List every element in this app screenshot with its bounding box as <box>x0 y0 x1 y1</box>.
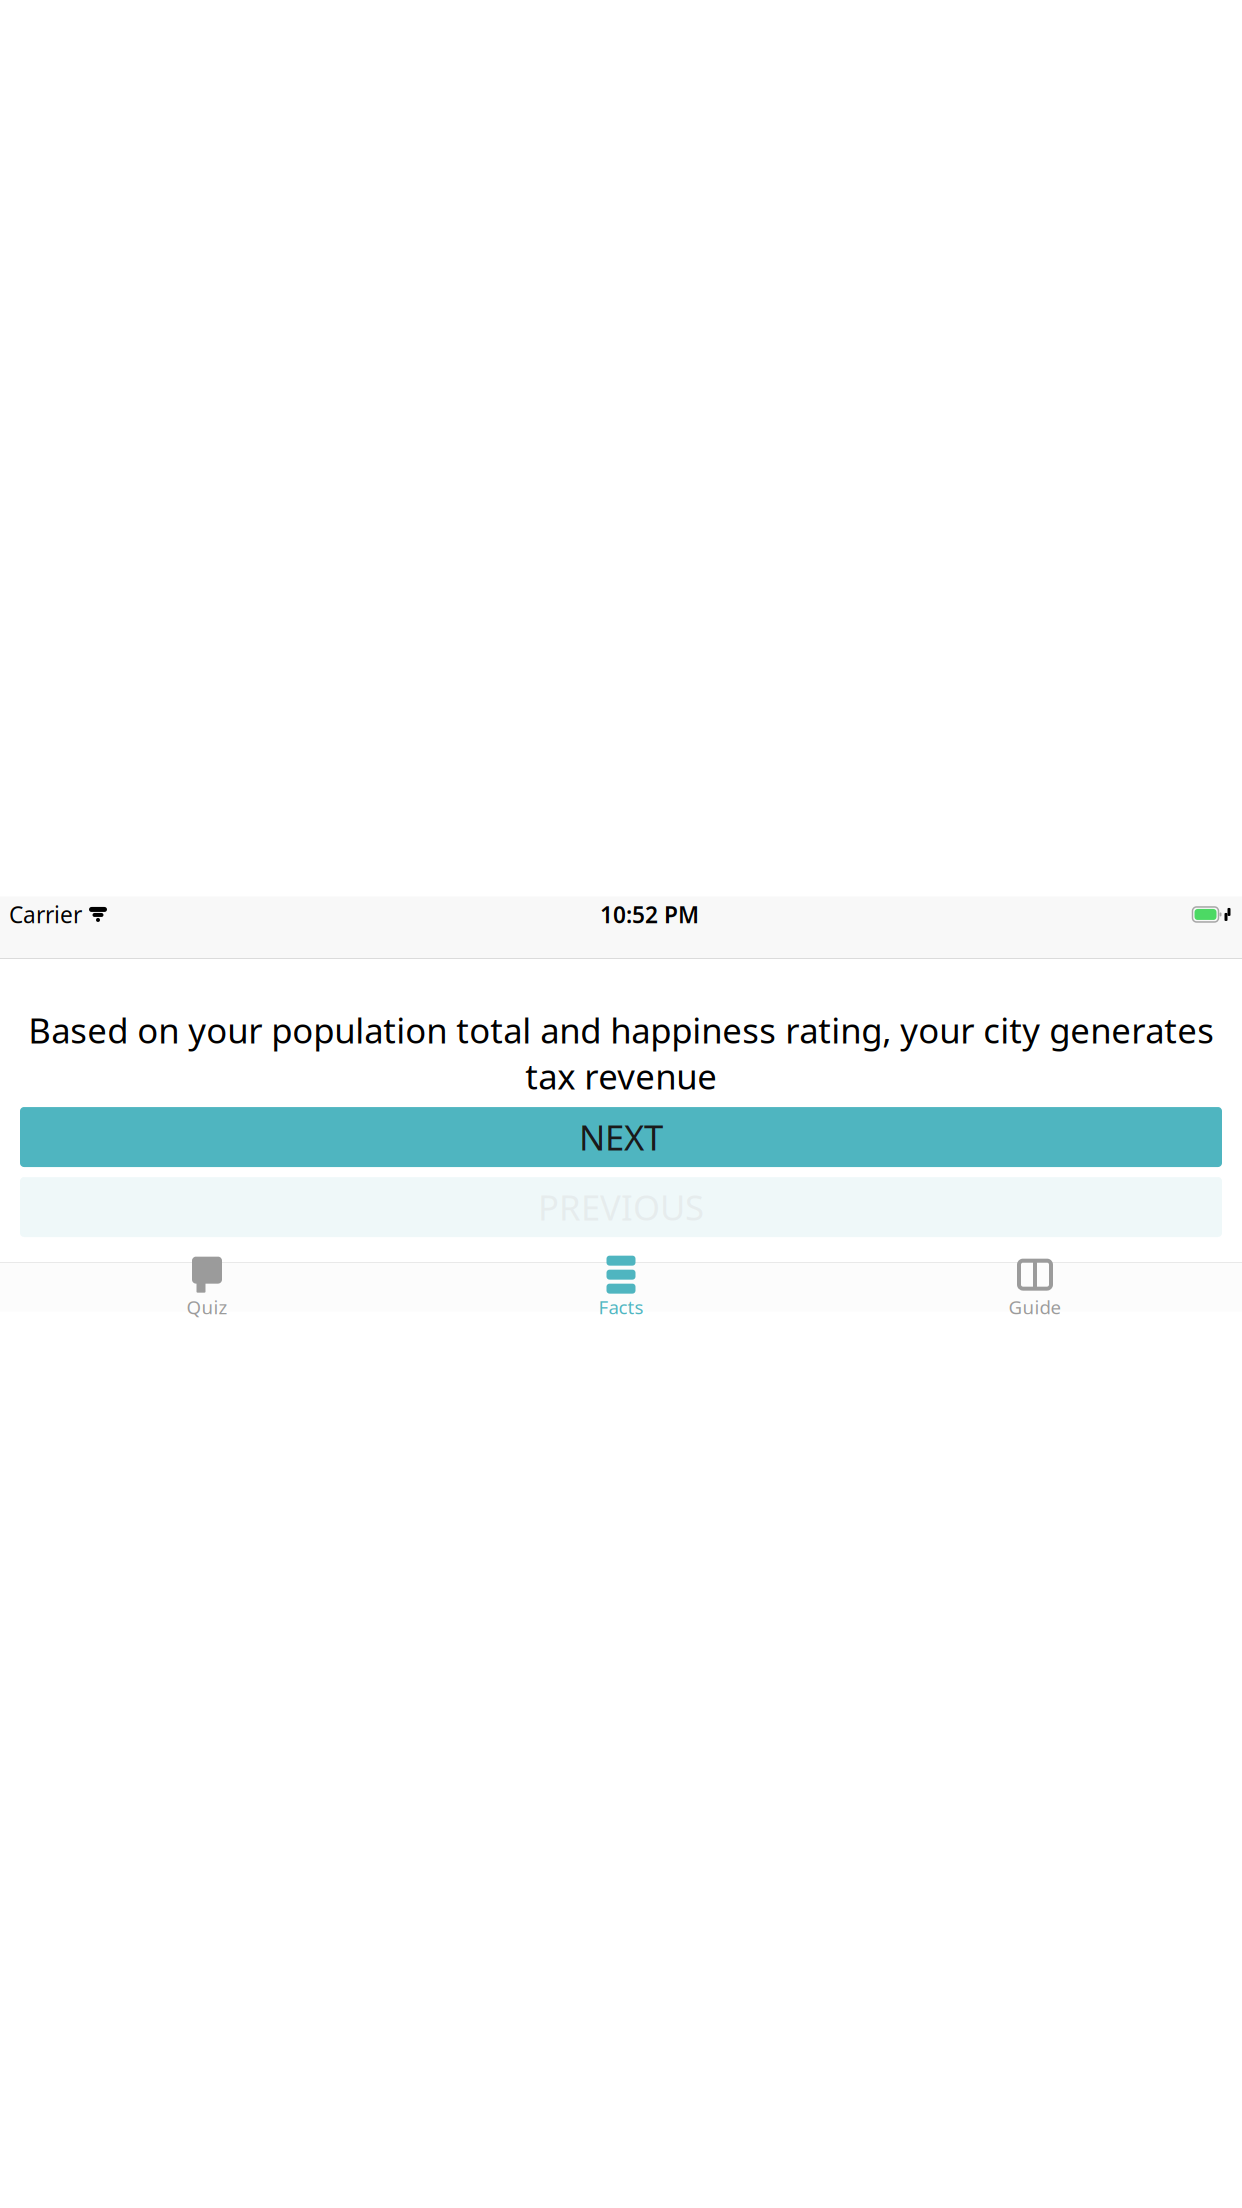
button[interactable]: NEXT <box>20 1107 1222 1167</box>
staticText: Facts <box>598 1295 643 1319</box>
staticText: PREVIOUS <box>538 1184 704 1230</box>
button[interactable]: Quiz <box>0 1251 414 1323</box>
staticText: Quiz <box>186 1295 227 1319</box>
button[interactable]: Guide <box>828 1251 1242 1323</box>
staticText: Guide <box>1008 1295 1061 1319</box>
staticText: 10:52 PM <box>600 899 699 929</box>
staticText: Carrier <box>9 899 82 929</box>
staticText: Based on your population total and happi… <box>28 1007 1214 1099</box>
button[interactable]: Facts <box>414 1251 828 1323</box>
staticText: NEXT <box>579 1114 663 1160</box>
